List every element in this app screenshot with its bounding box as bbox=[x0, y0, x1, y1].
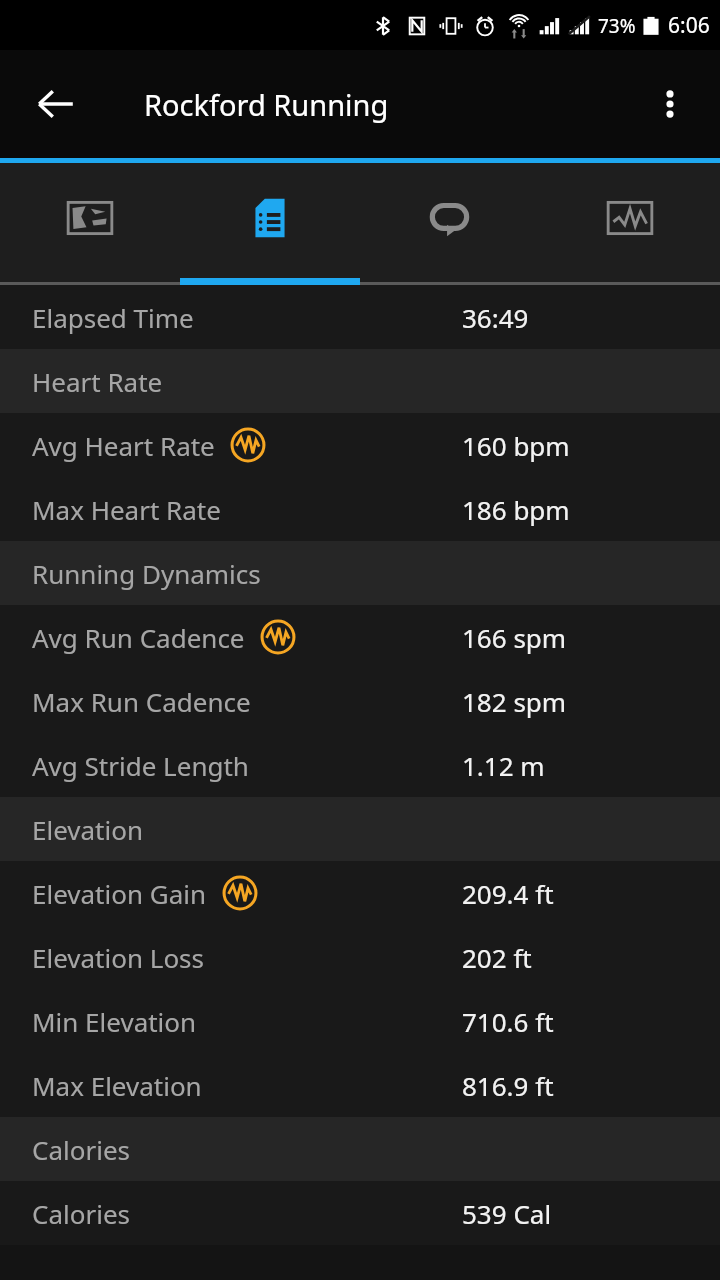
button[interactable]: Details bbox=[180, 163, 360, 285]
staticText: Running Dynamics bbox=[32, 556, 261, 591]
staticText: Rockford Running bbox=[144, 85, 389, 124]
staticText: 1.12 m bbox=[462, 748, 545, 783]
staticText: Avg Stride Length bbox=[32, 748, 249, 783]
staticText: 36:49 bbox=[462, 300, 529, 335]
staticText: Max Heart Rate bbox=[32, 492, 221, 527]
button[interactable]: Elevation Loss bbox=[0, 925, 720, 989]
button[interactable]: Avg Stride Length bbox=[0, 733, 720, 797]
staticText: 209.4 ft bbox=[462, 876, 554, 911]
button[interactable]: Min Elevation bbox=[0, 989, 720, 1053]
button[interactable]: Map bbox=[0, 163, 180, 285]
button[interactable]: More options bbox=[638, 72, 702, 136]
staticText: Heart Rate bbox=[32, 364, 163, 399]
button[interactable]: Back bbox=[24, 72, 88, 136]
button[interactable]: Elapsed Time bbox=[0, 285, 720, 349]
button[interactable]: Elevation Gain bbox=[0, 861, 720, 925]
staticText: 166 spm bbox=[462, 620, 567, 655]
staticText: 182 spm bbox=[462, 684, 567, 719]
staticText: Min Elevation bbox=[32, 1004, 197, 1039]
button[interactable]: Max Heart Rate bbox=[0, 477, 720, 541]
staticText: Elapsed Time bbox=[32, 300, 194, 335]
button[interactable]: Avg Run Cadence bbox=[0, 605, 720, 669]
staticText: 710.6 ft bbox=[462, 1004, 554, 1039]
staticText: 73% bbox=[598, 13, 636, 39]
button[interactable]: Calories bbox=[0, 1117, 720, 1181]
staticText: Calories bbox=[32, 1196, 131, 1231]
button[interactable]: Charts bbox=[540, 163, 720, 285]
staticText: 202 ft bbox=[462, 940, 532, 975]
staticText: Max Elevation bbox=[32, 1068, 202, 1103]
staticText: 539 Cal bbox=[462, 1196, 552, 1231]
staticText: Max Run Cadence bbox=[32, 684, 251, 719]
staticText: Elevation Loss bbox=[32, 940, 205, 975]
staticText: Avg Heart Rate bbox=[32, 428, 215, 463]
staticText: Elevation Gain bbox=[32, 876, 207, 911]
staticText: Avg Run Cadence bbox=[32, 620, 245, 655]
staticText: 186 bpm bbox=[462, 492, 570, 527]
button[interactable]: Elevation bbox=[0, 797, 720, 861]
staticText: 160 bpm bbox=[462, 428, 570, 463]
staticText: Calories bbox=[32, 1132, 131, 1167]
button[interactable]: Running Dynamics bbox=[0, 541, 720, 605]
button[interactable]: Laps bbox=[360, 163, 540, 285]
staticText: 816.9 ft bbox=[462, 1068, 554, 1103]
staticText: 6:06 bbox=[668, 11, 710, 40]
button[interactable]: Max Elevation bbox=[0, 1053, 720, 1117]
button[interactable]: Max Run Cadence bbox=[0, 669, 720, 733]
staticText: Elevation bbox=[32, 812, 143, 847]
button[interactable]: Avg Heart Rate bbox=[0, 413, 720, 477]
button[interactable]: Calories bbox=[0, 1181, 720, 1245]
button[interactable]: Heart Rate bbox=[0, 349, 720, 413]
